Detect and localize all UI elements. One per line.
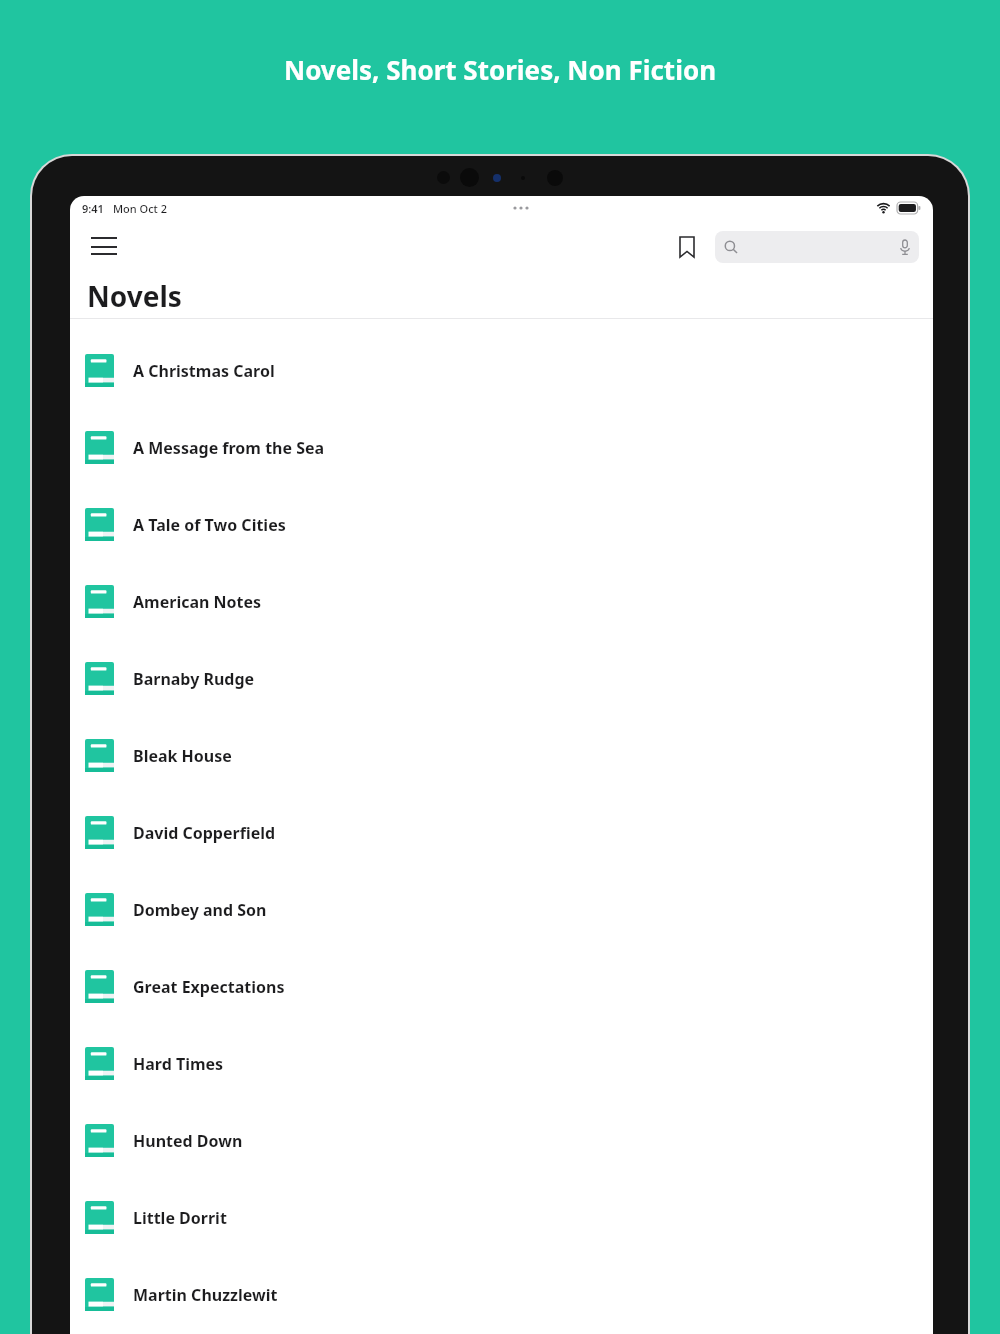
staticText: Mon Oct 2 [113,201,167,216]
staticText: A Tale of Two Cities [133,514,286,536]
staticText: Bleak House [133,745,232,767]
button[interactable]: Hunted Down [70,1102,933,1179]
button[interactable]: Menu [84,227,124,267]
button[interactable]: Hard Times [70,1025,933,1102]
staticText: 9:41 [82,201,104,216]
button[interactable]: Great Expectations [70,948,933,1025]
button[interactable]: Barnaby Rudge [70,640,933,717]
button[interactable]: Bookmarks [667,227,707,267]
staticText: Novels [87,277,182,315]
staticText: A Message from the Sea [133,437,325,459]
staticText: Barnaby Rudge [133,668,255,690]
staticText: Martin Chuzzlewit [133,1284,278,1306]
button[interactable]: American Notes [70,563,933,640]
button[interactable]: Martin Chuzzlewit [70,1256,933,1333]
button[interactable]: A Christmas Carol [70,332,933,409]
staticText: American Notes [133,591,262,613]
staticText: Novels, Short Stories, Non Fiction [284,52,717,87]
staticText: Hard Times [133,1053,224,1075]
staticText: Hunted Down [133,1130,243,1152]
button[interactable]: David Copperfield [70,794,933,871]
button[interactable]: A Message from the Sea [70,409,933,486]
staticText: A Christmas Carol [133,360,275,382]
button[interactable]: Search [715,231,919,263]
button[interactable]: A Tale of Two Cities [70,486,933,563]
button[interactable]: Bleak House [70,717,933,794]
staticText: Little Dorrit [133,1207,227,1229]
button[interactable]: Little Dorrit [70,1179,933,1256]
staticText: David Copperfield [133,822,276,844]
staticText: Dombey and Son [133,899,267,921]
button[interactable]: Dombey and Son [70,871,933,948]
staticText: Great Expectations [133,976,285,998]
